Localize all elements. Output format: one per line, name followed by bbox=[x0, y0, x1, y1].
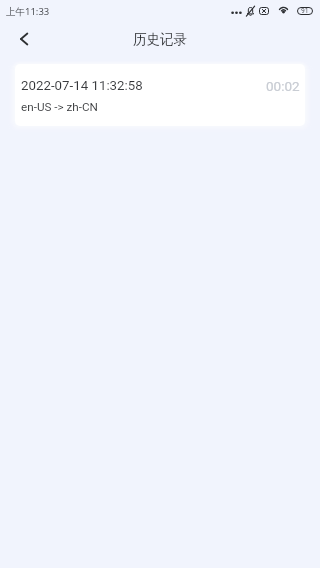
staticText: 上午11:33 bbox=[6, 5, 50, 18]
staticText: 2022-07-14 11:32:58 bbox=[21, 78, 143, 94]
staticText: en-US -> zh-CN bbox=[21, 100, 98, 114]
button[interactable]: 2022-07-14 11:32:58 bbox=[15, 64, 305, 126]
button[interactable]: Back bbox=[0, 22, 44, 56]
staticText: 91 bbox=[301, 7, 309, 15]
staticText: 历史记录 bbox=[133, 31, 187, 48]
staticText: 00:02 bbox=[266, 78, 300, 94]
